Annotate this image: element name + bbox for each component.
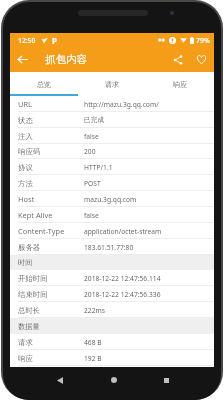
- staticText: 抓包内容: [45, 53, 87, 66]
- button[interactable]: 服务器: [10, 239, 214, 255]
- staticText: 总时长: [18, 306, 41, 315]
- button[interactable]: 响应: [10, 350, 214, 366]
- staticText: 请求: [18, 338, 33, 347]
- staticText: 192 B: [84, 354, 102, 363]
- staticText: POST: [84, 179, 101, 188]
- staticText: 已完成: [84, 116, 105, 124]
- staticText: 响应码: [18, 147, 41, 156]
- button[interactable]: 方法: [10, 175, 214, 191]
- button[interactable]: Back: [10, 47, 35, 72]
- staticText: mazu.3g.qq.com: [84, 195, 137, 204]
- button[interactable]: Host: [10, 191, 214, 207]
- button[interactable]: 请求: [78, 72, 146, 96]
- staticText: 响应: [173, 80, 187, 89]
- staticText: Kept Alive: [18, 210, 53, 220]
- button[interactable]: URL: [10, 96, 214, 112]
- staticText: 注入: [18, 132, 33, 141]
- staticText: 协议: [18, 163, 33, 172]
- staticText: HTTP/1.1: [84, 163, 113, 172]
- staticText: 12:50: [18, 36, 36, 45]
- staticText: URL: [18, 99, 32, 109]
- staticText: 2018-12-22 12:47:56.114: [84, 274, 161, 283]
- button[interactable]: 注入: [10, 128, 214, 144]
- staticText: false: [84, 132, 99, 141]
- button[interactable]: 响应码: [10, 144, 214, 159]
- staticText: P: [52, 35, 57, 46]
- staticText: 183.61.51.77:80: [84, 243, 134, 252]
- button[interactable]: 响应: [146, 72, 214, 96]
- staticText: 方法: [18, 179, 33, 188]
- staticText: 2018-12-22 12:47:56.336: [84, 290, 161, 299]
- button[interactable]: Content-Type: [10, 223, 214, 239]
- button[interactable]: 总时长: [10, 302, 214, 318]
- button[interactable]: 协议: [10, 159, 214, 175]
- button[interactable]: 开始时间: [10, 270, 214, 286]
- staticText: 200: [84, 147, 96, 156]
- button[interactable]: Favorite: [189, 47, 214, 72]
- button[interactable]: 请求: [10, 334, 214, 350]
- staticText: false: [84, 211, 99, 220]
- staticText: 请求: [105, 80, 119, 89]
- staticText: 开始时间: [18, 274, 48, 283]
- button[interactable]: Recents: [159, 373, 173, 387]
- button[interactable]: 总览: [10, 72, 78, 96]
- staticText: 状态: [18, 116, 33, 125]
- staticText: 总览: [37, 80, 51, 89]
- staticText: 79%: [196, 36, 210, 45]
- staticText: application/octet-stream: [84, 227, 162, 236]
- staticText: http://mazu.3g.qq.com/: [84, 100, 159, 109]
- button[interactable]: 结束时间: [10, 286, 214, 302]
- button[interactable]: Kept Alive: [10, 207, 214, 223]
- staticText: 时间: [18, 258, 33, 267]
- staticText: 数据量: [18, 322, 40, 331]
- staticText: 响应: [18, 354, 33, 363]
- staticText: 222ms: [84, 306, 105, 315]
- staticText: Content-Type: [18, 226, 65, 236]
- button[interactable]: Back: [53, 373, 67, 387]
- staticText: 服务器: [18, 243, 41, 252]
- button[interactable]: 状态: [10, 112, 214, 128]
- button[interactable]: Home: [107, 373, 121, 387]
- staticText: 结束时间: [18, 290, 48, 299]
- staticText: 468 B: [84, 338, 102, 347]
- button[interactable]: Share: [167, 47, 189, 72]
- staticText: Host: [18, 194, 35, 204]
